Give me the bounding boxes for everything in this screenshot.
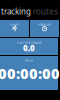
- staticText: km/h: [24, 48, 33, 53]
- staticText: 00:00:00: [0, 63, 60, 83]
- button[interactable]: interval: [30, 20, 59, 37]
- staticText: tracking: [1, 6, 31, 17]
- staticText: sport: [10, 21, 19, 27]
- staticText: current speed: [17, 39, 41, 45]
- staticText: routes: [33, 6, 58, 17]
- staticText: interval: [38, 21, 51, 27]
- staticText: time: [25, 57, 33, 63]
- button[interactable]: sport: [0, 20, 29, 37]
- staticText: 0.0: [23, 42, 35, 53]
